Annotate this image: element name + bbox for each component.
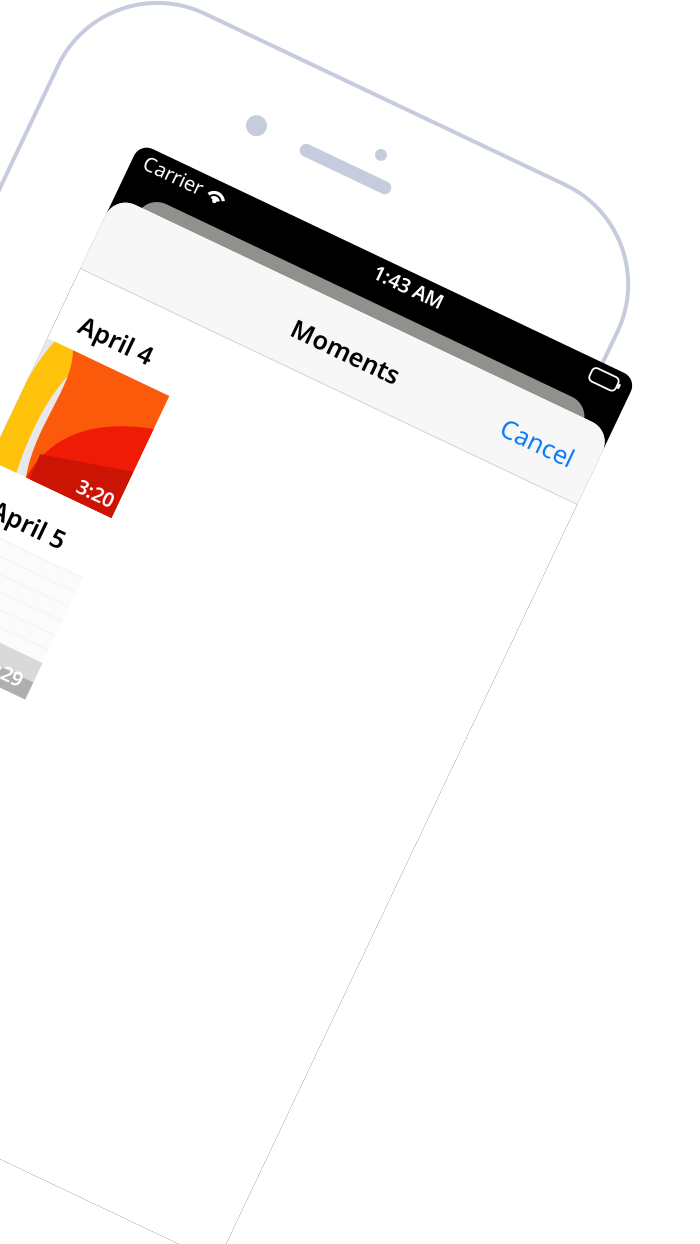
staticText: Carrier xyxy=(152,144,216,171)
button[interactable]: Cancel xyxy=(574,215,681,271)
staticText: 1:43 AM xyxy=(406,144,482,171)
staticText: Cancel xyxy=(588,226,667,260)
staticText: April 4 xyxy=(163,314,242,348)
button[interactable]: 3:20 xyxy=(140,359,275,494)
staticText: Moments xyxy=(356,226,473,260)
